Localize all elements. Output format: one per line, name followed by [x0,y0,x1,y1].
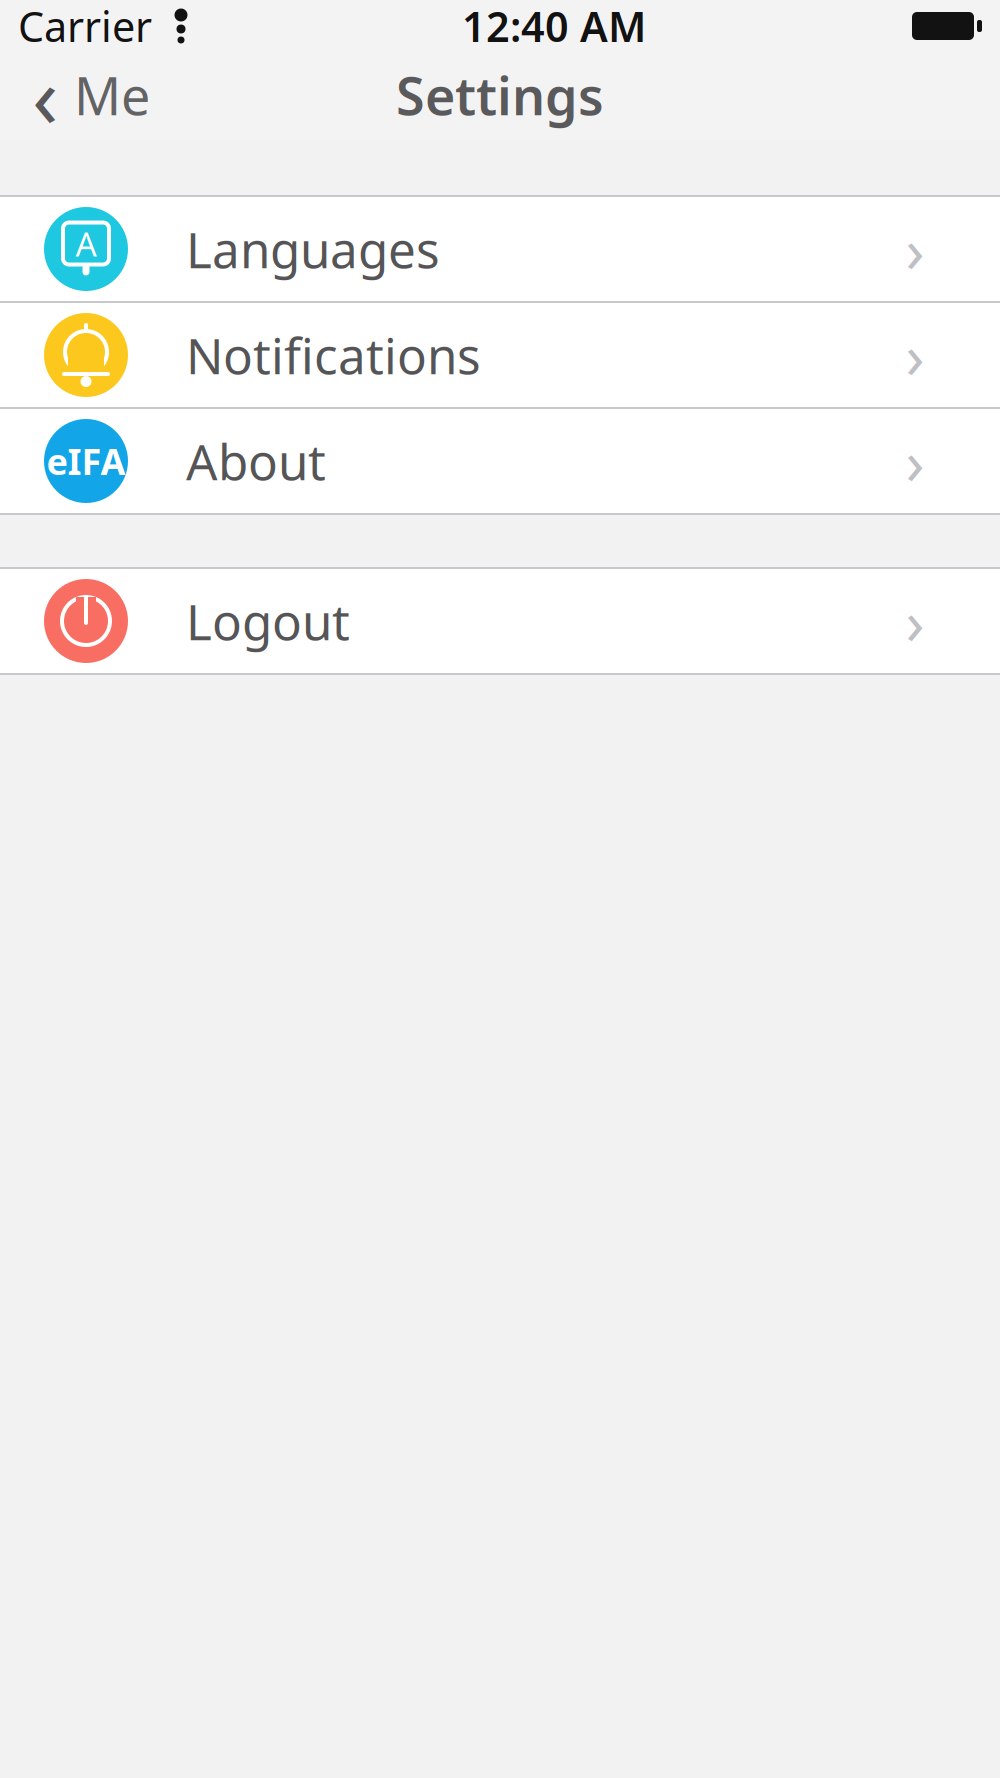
button[interactable]: ‹ [0,52,174,138]
staticText: Carrier [18,0,152,53]
staticText: Logout [186,588,350,654]
staticText: eIFA [46,437,125,485]
staticText: › [905,580,924,662]
staticText: 12:40 AM [462,0,646,53]
button[interactable]: Notifications [0,303,1000,407]
staticText: Settings [396,60,604,130]
staticText: Languages [186,216,440,282]
staticText: › [905,314,924,396]
button[interactable]: Logout [0,569,1000,673]
button[interactable]: eIFA [0,409,1000,513]
staticText: Me [74,60,150,130]
staticText: › [905,208,924,290]
staticText: ‹ [32,38,58,152]
staticText: Notifications [186,322,481,388]
staticText: › [905,420,924,502]
staticText: About [186,428,326,494]
staticText: A [75,221,96,266]
button[interactable]: A [0,197,1000,301]
